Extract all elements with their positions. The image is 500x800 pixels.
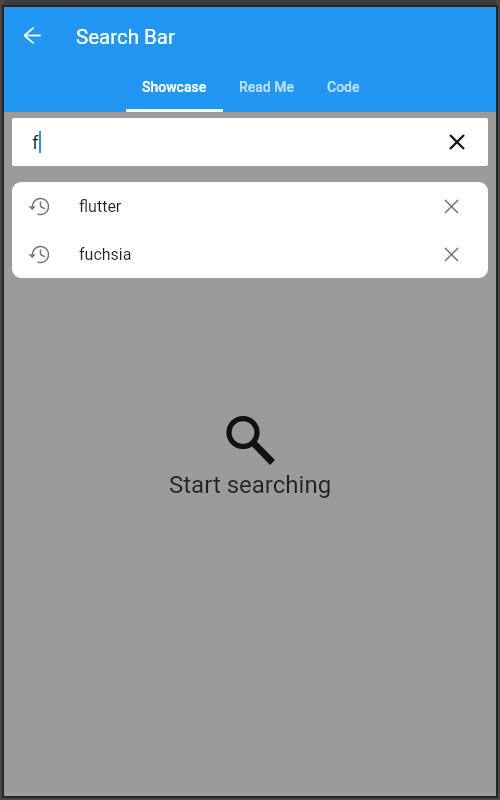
button[interactable]: f (12, 118, 488, 166)
staticText: Start searching (169, 471, 332, 499)
staticText: Showcase (142, 79, 207, 95)
staticText: f (32, 131, 39, 153)
button[interactable]: flutter (12, 182, 488, 230)
staticText: flutter (79, 197, 122, 216)
button[interactable]: Remove fuchsia (433, 236, 469, 272)
staticText: Read Me (239, 79, 295, 95)
button[interactable]: Back (10, 13, 54, 57)
button[interactable]: Clear search (441, 126, 473, 158)
staticText: fuchsia (79, 245, 132, 264)
button[interactable]: Showcase (126, 66, 223, 112)
button[interactable]: Code (311, 66, 376, 112)
button[interactable]: Remove flutter (433, 188, 469, 224)
button[interactable]: Read Me (223, 66, 311, 112)
staticText: Search Bar (76, 25, 175, 49)
button[interactable]: fuchsia (12, 230, 488, 278)
staticText: Code (327, 79, 360, 95)
